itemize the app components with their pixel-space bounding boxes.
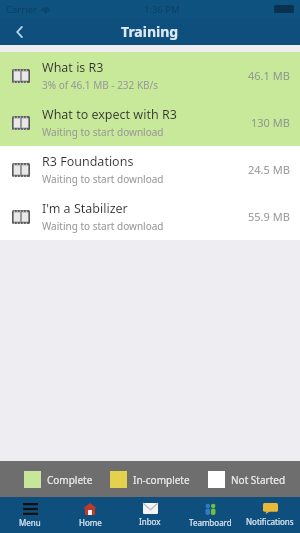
staticText: 55.9 MB (248, 209, 290, 224)
staticText: What is R3 (42, 59, 104, 76)
staticText: Home (79, 517, 102, 528)
staticText: Training (121, 22, 179, 41)
button[interactable]: What is R3 (0, 52, 300, 99)
staticText: I'm a Stabilizer (42, 200, 128, 217)
staticText: Notifications (246, 516, 294, 527)
button[interactable]: I'm a Stabilizer (0, 193, 300, 240)
button[interactable]: Complete (24, 471, 93, 488)
button[interactable]: In-complete (110, 471, 190, 488)
button[interactable]: Inbox (120, 497, 180, 533)
staticText: Carrier (6, 3, 37, 16)
staticText: Complete (47, 473, 93, 487)
button[interactable]: What to expect with R3 (0, 99, 300, 146)
button[interactable]: Menu (0, 497, 60, 533)
button[interactable]: Back (0, 18, 40, 45)
staticText: 24.5 MB (248, 162, 290, 177)
button[interactable]: R3 Foundations (0, 146, 300, 193)
staticText: Menu (19, 517, 41, 528)
staticText: Not Started (231, 473, 286, 487)
staticText: R3 Foundations (42, 153, 134, 170)
staticText: Teamboard (189, 517, 232, 528)
staticText: 130 MB (251, 115, 290, 130)
staticText: 46.1 MB (248, 68, 290, 83)
staticText: What to expect with R3 (42, 106, 177, 123)
staticText: Inbox (139, 516, 161, 527)
button[interactable]: Teamboard (180, 497, 240, 533)
staticText: Waiting to start download (42, 219, 164, 233)
staticText: 3% of 46.1 MB - 232 KB/s (42, 78, 159, 92)
staticText: Waiting to start download (42, 172, 164, 186)
staticText: In-complete (133, 473, 190, 487)
staticText: Waiting to start download (42, 125, 164, 139)
button[interactable]: Home (60, 497, 120, 533)
staticText: 1:36 PM (144, 3, 180, 16)
button[interactable]: Not Started (208, 471, 286, 488)
button[interactable]: Notifications (240, 497, 300, 533)
